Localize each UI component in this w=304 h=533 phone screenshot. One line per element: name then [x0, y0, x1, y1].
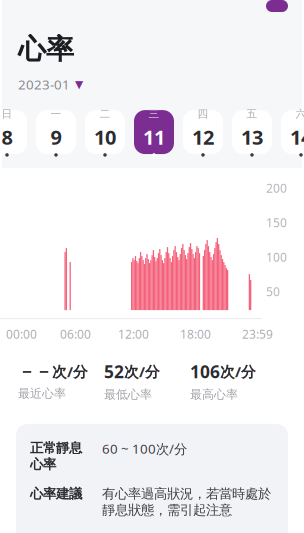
staticText: 三 [148, 107, 159, 121]
staticText: 12:00 [118, 326, 149, 342]
staticText: 106 [190, 360, 220, 383]
staticText: 二 [99, 107, 110, 121]
staticText: 2023-01 [18, 75, 70, 93]
staticText: 14 [290, 124, 304, 150]
staticText: 四 [197, 107, 208, 121]
staticText: 10 [94, 124, 116, 150]
staticText: 60 ~ 100次/分 [102, 440, 187, 457]
staticText: 150 [266, 215, 287, 230]
staticText: 11 [143, 124, 165, 150]
staticText: 12 [192, 124, 214, 150]
button[interactable]: 二 [85, 110, 125, 154]
staticText: 00:00 [6, 326, 37, 342]
staticText: 心率建議 [30, 485, 82, 502]
button[interactable]: 四 [183, 110, 223, 154]
staticText: 最高心率 [190, 387, 238, 402]
staticText: 100 [266, 249, 287, 265]
staticText: 最低心率 [104, 387, 152, 402]
staticText: 50 [266, 284, 280, 299]
staticText: 日 [1, 107, 12, 121]
staticText: ▼ [75, 78, 83, 90]
staticText: 次/分 [124, 362, 160, 381]
staticText: 最近心率 [18, 386, 66, 401]
button[interactable]: 六 [281, 110, 304, 154]
staticText: 18:00 [180, 326, 211, 342]
button[interactable]: 2023-01 [18, 66, 83, 93]
button[interactable]: 五 [232, 110, 272, 154]
staticText: 次/分 [220, 362, 256, 381]
staticText: 06:00 [60, 326, 91, 342]
staticText: 心率 [18, 32, 74, 66]
staticText: 次/分 [52, 362, 88, 381]
staticText: 8 [1, 124, 12, 150]
staticText: 52 [104, 360, 124, 383]
button[interactable]: 三 [134, 110, 174, 154]
staticText: 23:59 [242, 326, 273, 342]
staticText: 9 [50, 124, 61, 150]
staticText: 一 [50, 107, 61, 121]
staticText: 13 [241, 124, 263, 150]
staticText: 正常靜息心率 [30, 440, 82, 473]
staticText: 六 [295, 107, 304, 121]
staticText: －－ [18, 361, 52, 382]
staticText: 五 [246, 107, 257, 121]
button[interactable]: 一 [36, 110, 76, 154]
staticText: 200 [266, 180, 287, 196]
button[interactable]: 日 [0, 110, 27, 154]
staticText: 有心率過高狀況，若當時處於靜息狀態，需引起注意 [102, 485, 271, 518]
